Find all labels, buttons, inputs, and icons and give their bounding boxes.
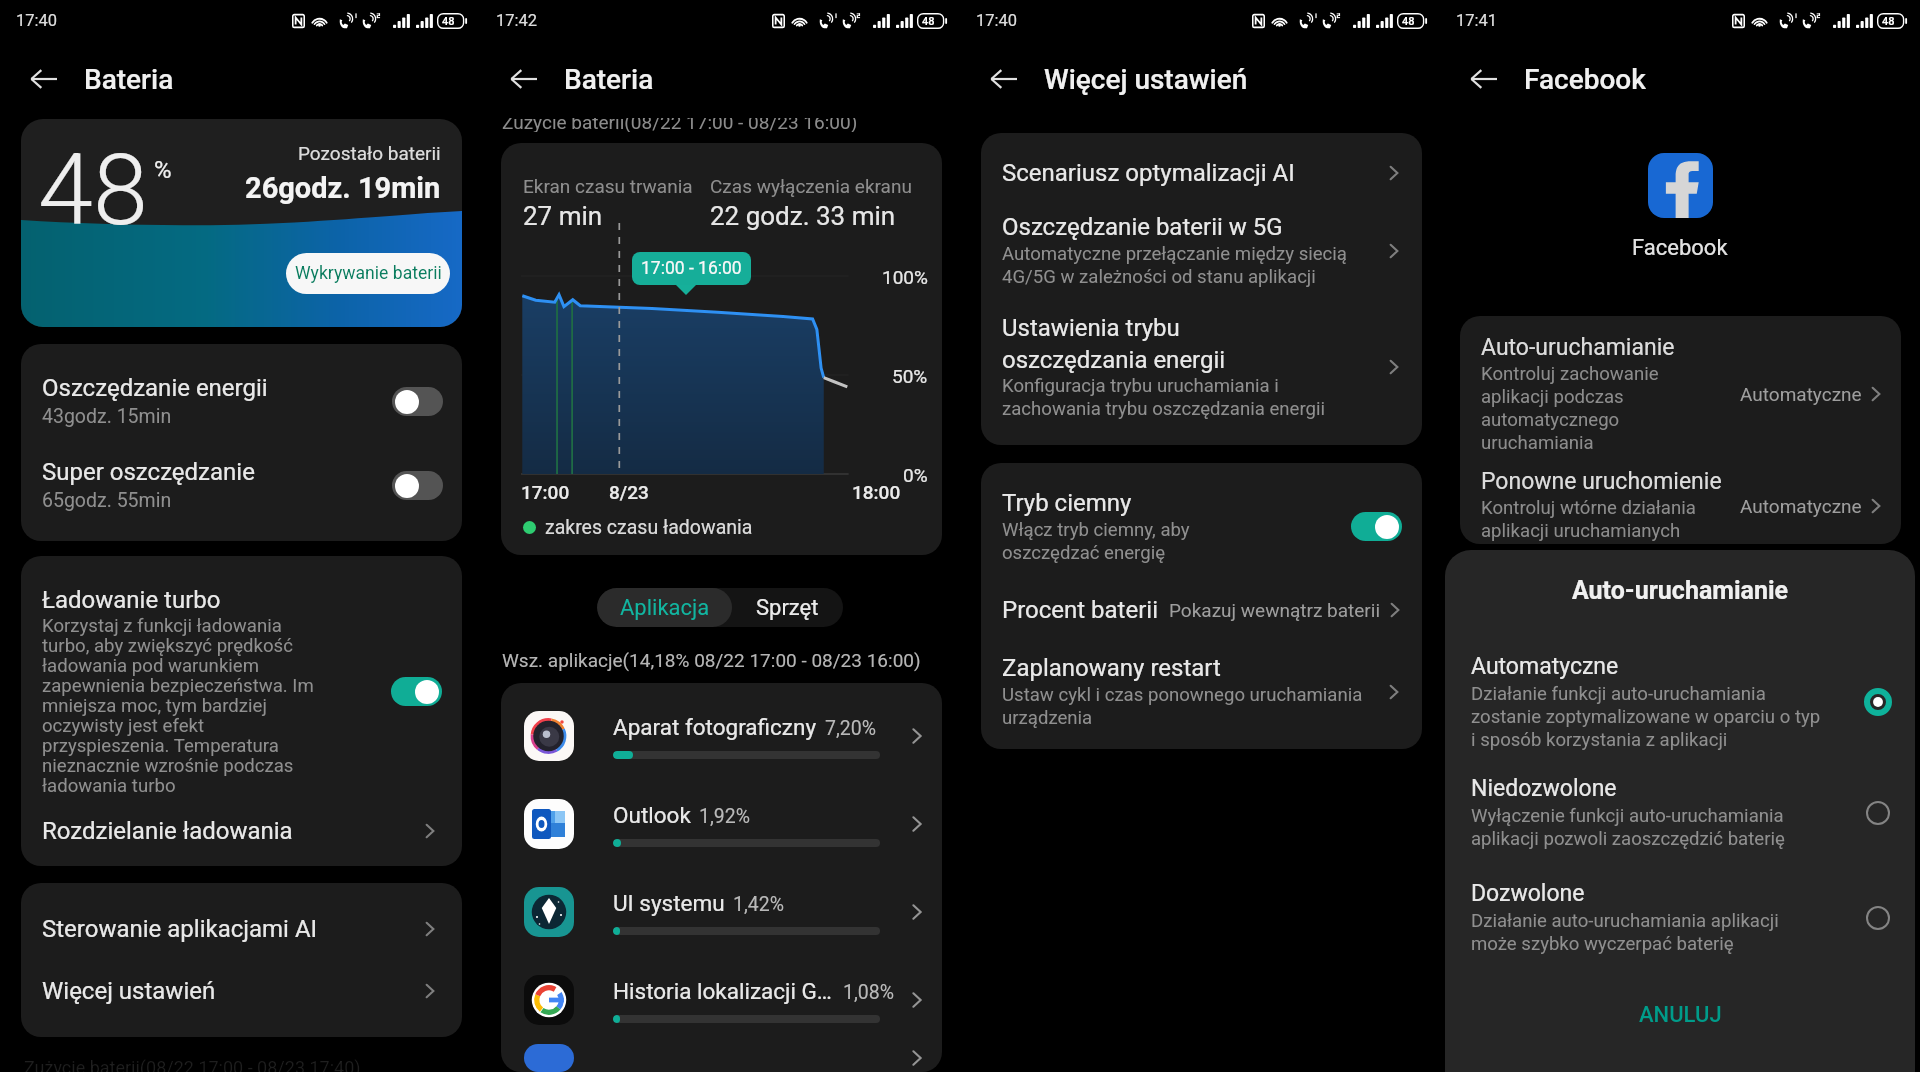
staticText: 0% (903, 464, 928, 486)
button[interactable]: Scenariusz optymalizacji AI (981, 146, 1422, 200)
button[interactable]: Sterowanie aplikacjami AI (21, 898, 462, 960)
button[interactable]: ANULUJ (1445, 997, 1915, 1033)
staticText: Ustawienia trybu oszczędzania energii (1002, 314, 1312, 373)
staticText: Sterowanie aplikacjami AI (42, 915, 418, 943)
staticText: Konfiguracja trybu uruchamiania i zachow… (1002, 375, 1382, 420)
staticText: Więcej ustawień (1044, 63, 1248, 96)
staticText: UI systemu (613, 890, 725, 916)
button[interactable]: Super oszczędzanie (21, 458, 462, 512)
staticText: Scenariusz optymalizacji AI (1002, 159, 1312, 187)
staticText: 100% (882, 266, 928, 288)
staticText: Dozwolone (1471, 880, 1585, 907)
staticText: Kontroluj zachowanie aplikacji podczas a… (1481, 363, 1681, 454)
staticText: 17:42 (496, 11, 538, 30)
button[interactable]: Sprzęt (732, 588, 843, 627)
staticText: 22 godz. 33 min (710, 201, 896, 231)
staticText: 43godz. 15min (42, 405, 172, 428)
staticText: 48 (1402, 15, 1415, 28)
staticText: Tryb ciemny (1002, 489, 1132, 517)
staticText: Facebook (1632, 235, 1728, 261)
staticText: Więcej ustawień (42, 977, 418, 1005)
button[interactable]: Auto-uruchamianie (1460, 334, 1901, 454)
button[interactable]: Ładowanie turbo (21, 556, 462, 796)
staticText: 48 (442, 15, 455, 28)
staticText: Rozdzielanie ładowania (42, 817, 418, 845)
staticText: Outlook (613, 802, 691, 828)
button[interactable]: Off (392, 387, 443, 416)
staticText: Korzystaj z funkcji ładowania turbo, aby… (42, 615, 328, 796)
staticText: Bateria (564, 63, 654, 96)
button[interactable]: On (391, 677, 442, 706)
button[interactable] (501, 1044, 942, 1072)
staticText: 17:40 (976, 11, 1018, 30)
button[interactable]: Tryb ciemny (981, 463, 1422, 564)
button[interactable]: Automatyczne (1445, 653, 1915, 751)
staticText: 27 min (523, 201, 603, 231)
staticText: Automatyczne (1740, 383, 1862, 405)
staticText: Wykrywanie baterii (295, 263, 442, 284)
staticText: Ustaw cykl i czas ponownego uruchamiania… (1002, 684, 1382, 729)
staticText: Automatyczne przełączanie między siecią … (1002, 243, 1382, 288)
staticText: 17:00 (521, 481, 570, 503)
staticText: 7,20% (825, 717, 876, 740)
button[interactable]: Ustawienia trybu oszczędzania energii (981, 301, 1422, 433)
button[interactable]: Oszczędzanie energii (21, 374, 462, 428)
staticText: Historia lokalizacji Go.. (613, 978, 835, 1004)
button[interactable]: On (1351, 512, 1402, 541)
staticText: Automatyczne (1471, 653, 1619, 680)
button[interactable]: Back (1470, 61, 1506, 97)
staticText: Wyłączenie funkcji auto-uruchamiania apl… (1471, 805, 1821, 850)
staticText: 18:00 (852, 481, 901, 503)
button[interactable]: Oszczędzanie baterii w 5G (981, 200, 1422, 301)
staticText: Ponowne uruchomienie (1481, 468, 1722, 495)
staticText: Aparat fotograficzny (613, 714, 817, 740)
staticText: 65godz. 55min (42, 489, 172, 512)
staticText: 48 (1882, 15, 1895, 28)
staticText: 1,42% (733, 893, 784, 916)
staticText: Zaplanowany restart (1002, 654, 1221, 682)
staticText: Facebook (1524, 63, 1646, 96)
button[interactable]: Więcej ustawień (21, 960, 462, 1022)
button[interactable]: Off (392, 471, 443, 500)
staticText: Oszczędzanie energii (42, 374, 268, 402)
staticText: Pokazuj wewnątrz baterii (1169, 599, 1381, 621)
staticText: Ekran czasu trwania (523, 175, 693, 197)
staticText: Niedozwolone (1471, 775, 1617, 802)
staticText: ANULUJ (1639, 1002, 1722, 1028)
staticText: Wsz. aplikacje(14,18% 08/22 17:00 - 08/2… (502, 649, 921, 671)
staticText: Auto-uruchamianie (1445, 576, 1915, 605)
button[interactable]: Niedozwolone (1445, 775, 1915, 850)
staticText: 8/23 (609, 481, 649, 503)
staticText: zakres czasu ładowania (545, 516, 753, 539)
button[interactable]: Procent baterii (981, 586, 1422, 634)
staticText: 50% (892, 365, 928, 387)
button[interactable]: Rozdzielanie ładowania (21, 796, 462, 866)
staticText: Działanie auto-uruchamiania aplikacji mo… (1471, 910, 1821, 955)
staticText: 48 (922, 15, 935, 28)
staticText: Procent baterii (1002, 596, 1158, 624)
staticText: Zużycie baterii(08/22 17:00 - 08/23 16:0… (502, 118, 858, 132)
button[interactable]: Aparat fotograficzny (501, 692, 942, 780)
staticText: Sprzęt (756, 595, 819, 621)
staticText: Działanie funkcji auto-uruchamiania zost… (1471, 683, 1821, 751)
button[interactable]: UI systemu (501, 868, 942, 956)
button[interactable]: Back (30, 61, 66, 97)
staticText: Pozostało baterii (298, 142, 441, 164)
button[interactable]: Dozwolone (1445, 880, 1915, 955)
button[interactable]: Ponowne uruchomienie (1460, 468, 1901, 544)
staticText: 17:41 (1456, 11, 1498, 30)
staticText: Kontroluj wtórne działania aplikacji uru… (1481, 497, 1713, 544)
button[interactable]: Wykrywanie baterii (286, 253, 450, 294)
staticText: Czas wyłączenia ekranu (710, 175, 912, 197)
staticText: Auto-uruchamianie (1481, 334, 1675, 361)
button[interactable]: Back (510, 61, 546, 97)
staticText: Aplikacja (620, 595, 710, 621)
staticText: 26godz. 19min (245, 171, 441, 205)
button[interactable]: Aplikacja (597, 588, 732, 627)
staticText: 1,92% (699, 805, 750, 828)
button[interactable]: Outlook (501, 780, 942, 868)
button[interactable]: Back (990, 61, 1026, 97)
staticText: Automatyczne (1740, 495, 1862, 517)
button[interactable]: Zaplanowany restart (981, 654, 1422, 729)
button[interactable]: Historia lokalizacji Go.. (501, 956, 942, 1044)
